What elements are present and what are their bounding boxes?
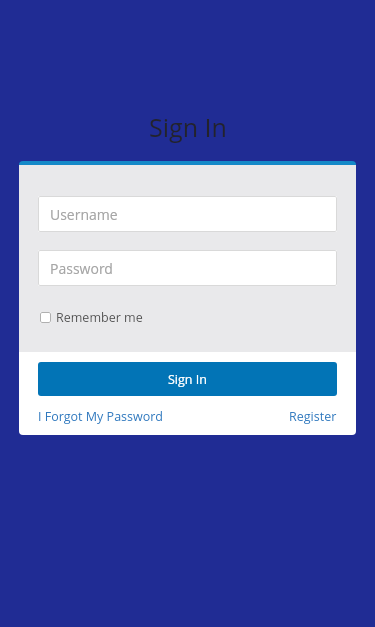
- staticText: Username: [50, 205, 118, 224]
- staticText: Sign In: [168, 371, 207, 388]
- staticText: Sign In: [149, 110, 227, 144]
- button[interactable]: Remember me: [40, 309, 143, 326]
- staticText: Remember me: [56, 309, 143, 326]
- button[interactable]: Register: [289, 408, 337, 425]
- button[interactable]: Password: [38, 250, 337, 286]
- button[interactable]: Username: [38, 196, 337, 232]
- staticText: Password: [50, 259, 113, 278]
- button[interactable]: Sign In: [38, 362, 337, 396]
- button[interactable]: I Forgot My Password: [38, 408, 163, 425]
